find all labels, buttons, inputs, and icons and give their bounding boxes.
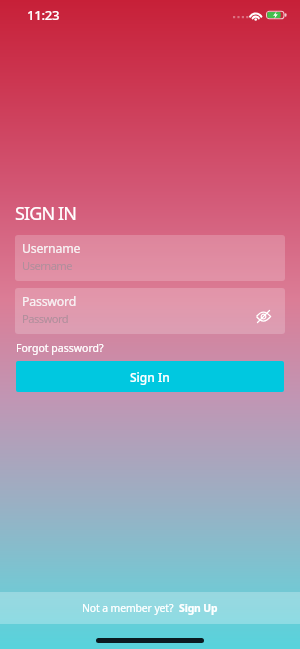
- staticText: Username: [22, 240, 81, 257]
- staticText: SIGN IN: [15, 201, 76, 226]
- button[interactable]: Username: [15, 235, 285, 281]
- staticText: Username: [22, 258, 73, 273]
- staticText: Password: [22, 293, 77, 310]
- staticText: Password: [22, 311, 69, 326]
- button[interactable]: Show password: [250, 303, 276, 329]
- button[interactable]: Password: [15, 288, 285, 334]
- button[interactable]: Sign Up: [179, 601, 218, 615]
- button[interactable]: Sign In: [16, 361, 284, 392]
- button[interactable]: Forgot password?: [16, 341, 104, 355]
- staticText: Not a member yet?: [82, 601, 174, 615]
- staticText: Sign In: [130, 369, 170, 385]
- staticText: 11:23: [27, 6, 60, 24]
